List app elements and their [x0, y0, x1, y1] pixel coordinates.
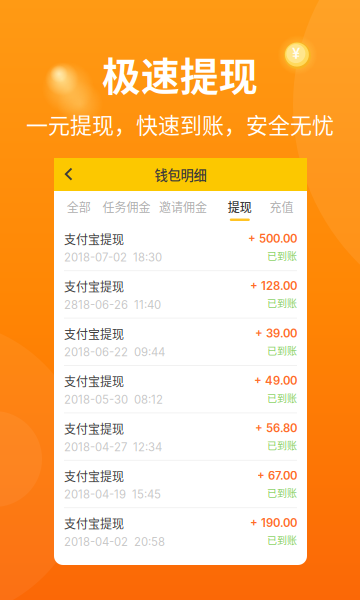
staticText: 已到账	[267, 533, 297, 547]
staticText: 已到账	[267, 391, 297, 405]
staticText: 钱包明细	[154, 165, 206, 184]
button[interactable]: 支付宝提现	[54, 414, 307, 461]
staticText: 一元提现，快速到账，安全无忧	[26, 108, 334, 140]
staticText: ¥	[292, 45, 300, 62]
button[interactable]: 支付宝提现	[54, 224, 307, 271]
staticText: + 56.80	[255, 421, 297, 435]
staticText: + 49.00	[254, 374, 297, 388]
staticText: 支付宝提现	[64, 515, 124, 532]
button[interactable]: 提现	[228, 191, 252, 224]
button[interactable]: 任务佣金	[103, 191, 151, 224]
staticText: 2018-07-02 18:30	[64, 251, 162, 264]
staticText: 提现	[228, 198, 252, 215]
staticText: + 67.00	[257, 469, 297, 482]
staticText: 支付宝提现	[64, 230, 124, 248]
staticText: 支付宝提现	[64, 278, 124, 295]
staticText: 支付宝提现	[64, 467, 124, 485]
staticText: 全部	[67, 198, 91, 215]
staticText: 2018-06-22 09:44	[64, 345, 165, 359]
staticText: 极速提现	[102, 46, 258, 102]
staticText: 任务佣金	[103, 198, 151, 215]
staticText: 2018-05-30 08:12	[64, 393, 163, 406]
button[interactable]: 支付宝提现	[54, 366, 307, 414]
staticText: 2018-04-19 15:45	[64, 488, 161, 501]
staticText: 邀请佣金	[159, 198, 207, 215]
button[interactable]: 支付宝提现	[54, 461, 307, 508]
staticText: 已到账	[267, 343, 297, 358]
staticText: 已到账	[267, 296, 297, 310]
staticText: + 39.00	[255, 326, 297, 340]
button[interactable]: Back	[54, 158, 84, 191]
button[interactable]: 充值	[269, 191, 293, 224]
staticText: 支付宝提现	[64, 372, 124, 390]
staticText: 已到账	[267, 438, 297, 452]
button[interactable]: 支付宝提现	[54, 271, 307, 319]
staticText: 2818-06-26 11:40	[64, 298, 161, 312]
staticText: + 128.00	[250, 279, 297, 293]
button[interactable]: 全部	[67, 191, 91, 224]
staticText: + 190.00	[250, 516, 297, 530]
staticText: 充值	[269, 198, 293, 215]
staticText: 2018-04-02 20:58	[64, 535, 165, 549]
staticText: 已到账	[267, 248, 297, 263]
button[interactable]: 邀请佣金	[159, 191, 207, 224]
staticText: + 500.00	[248, 232, 297, 245]
staticText: 2018-04-27 12:34	[64, 440, 162, 454]
staticText: 已到账	[267, 485, 297, 500]
staticText: 支付宝提现	[64, 420, 124, 437]
staticText: 支付宝提现	[64, 325, 124, 342]
button[interactable]: 支付宝提现	[54, 508, 307, 556]
button[interactable]: 支付宝提现	[54, 319, 307, 366]
